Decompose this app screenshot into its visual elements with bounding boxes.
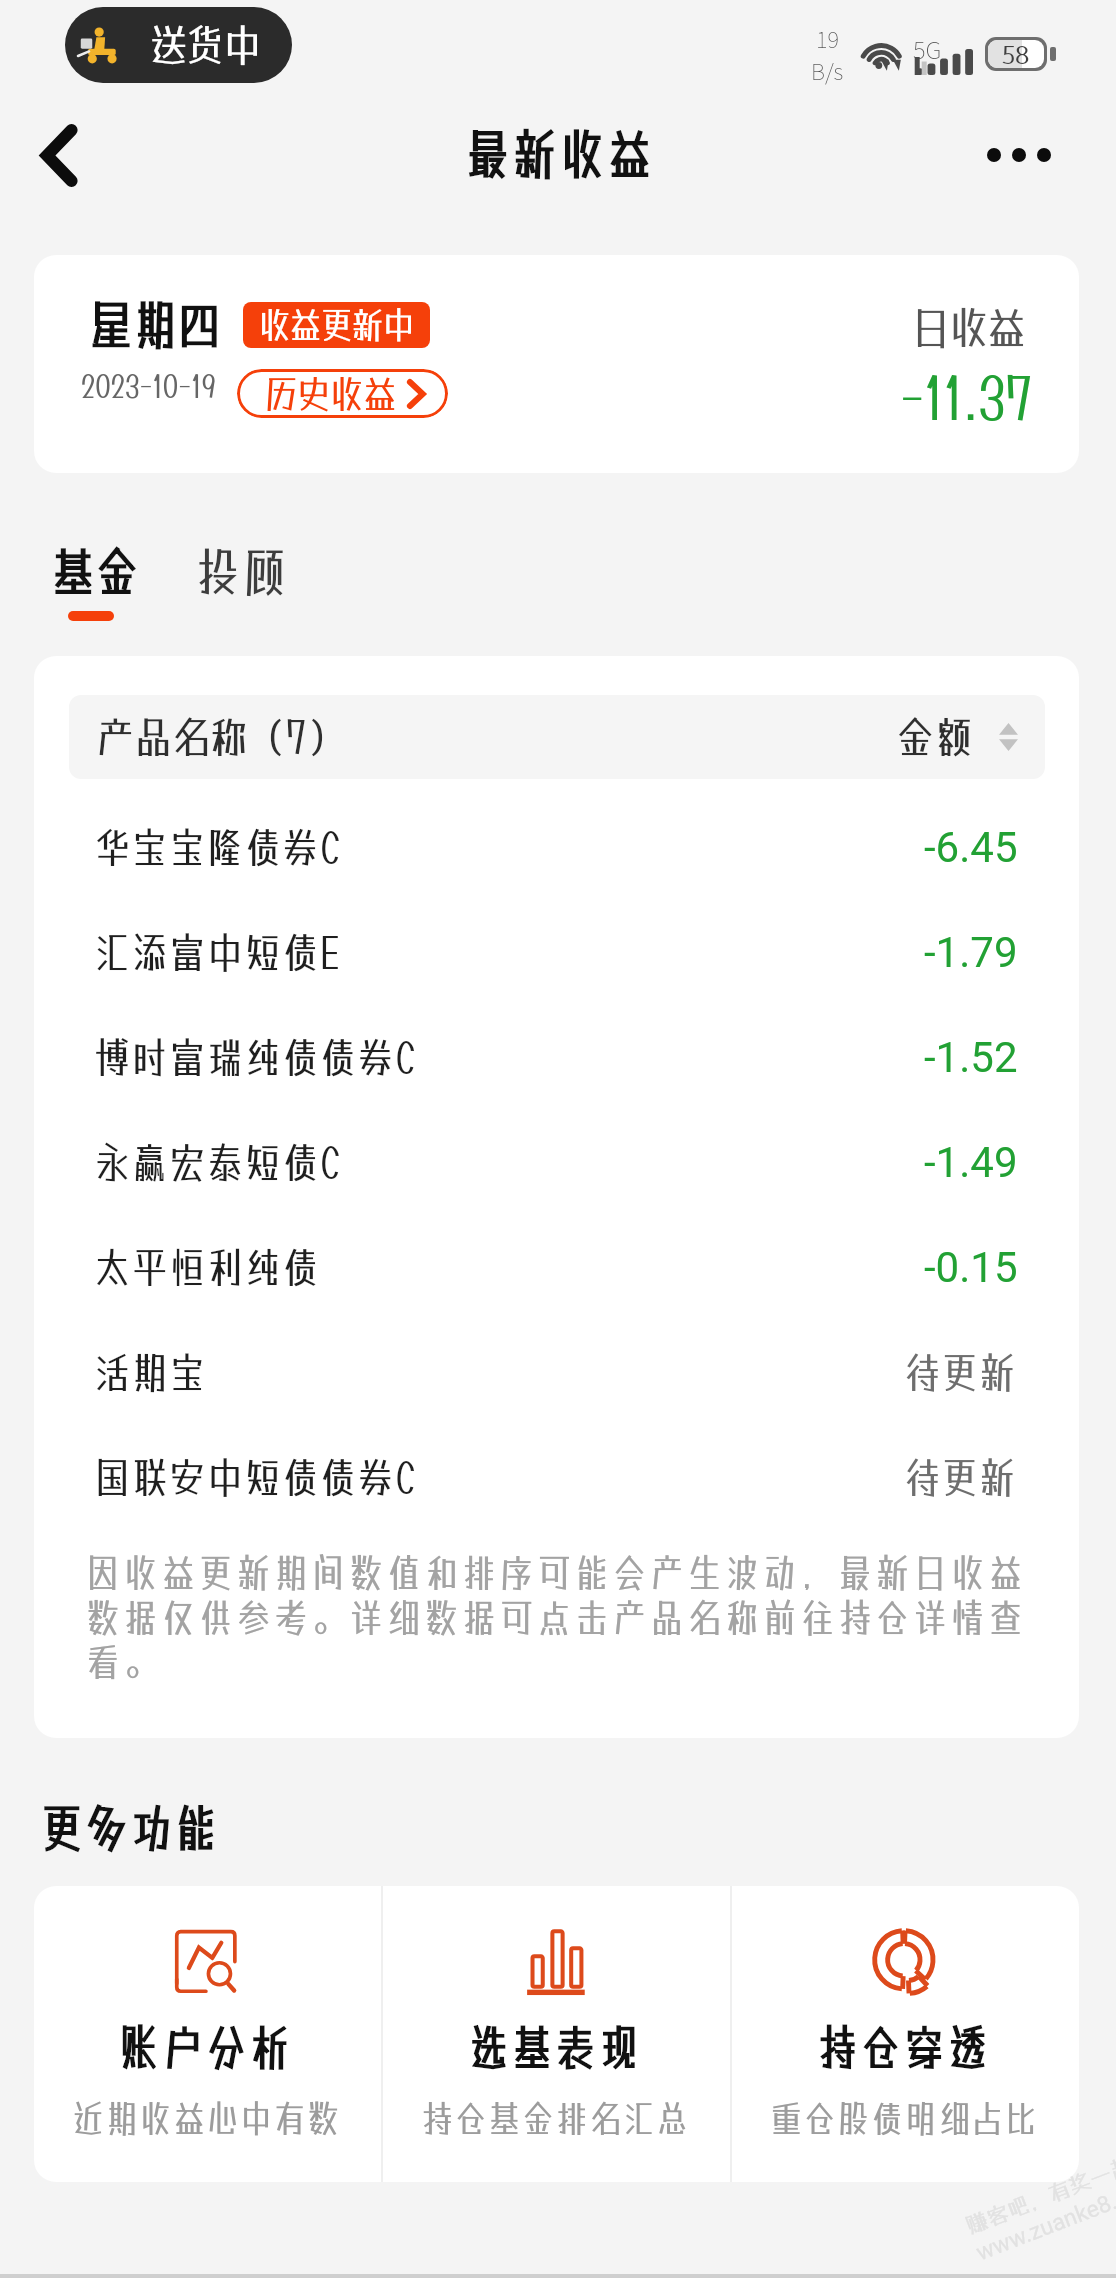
button[interactable]: Back bbox=[16, 112, 102, 198]
staticText: 活期宝 bbox=[95, 1347, 208, 1398]
staticText: 近期收益心中有数 bbox=[73, 2096, 343, 2141]
button[interactable]: 活期宝 bbox=[34, 1327, 1079, 1417]
staticText: -1.49 bbox=[924, 1138, 1018, 1187]
staticText: 19 bbox=[816, 22, 839, 54]
button[interactable]: 送货中 bbox=[65, 7, 292, 83]
staticText: 更多功能 bbox=[42, 1797, 222, 1858]
staticText: 58 bbox=[1002, 40, 1030, 68]
button[interactable]: 账户分析 bbox=[34, 1886, 381, 2182]
button[interactable]: 汇添富中短债E bbox=[34, 907, 1079, 997]
button[interactable]: 基金 bbox=[53, 540, 141, 603]
button[interactable]: 产品名称（7） bbox=[69, 695, 1045, 779]
button[interactable]: 星期四 bbox=[34, 255, 1079, 473]
staticText: www.zuanke8.com bbox=[972, 2172, 1116, 2266]
staticText: -6.45 bbox=[924, 823, 1018, 872]
staticText: -1.79 bbox=[924, 928, 1018, 977]
button[interactable]: 选基表现 bbox=[383, 1886, 730, 2182]
staticText: 金额 bbox=[897, 711, 974, 763]
staticText: 太平恒利纯债 bbox=[95, 1242, 321, 1293]
button[interactable]: 国联安中短债债券C bbox=[34, 1432, 1079, 1522]
button[interactable]: 博时富瑞纯债债券C bbox=[34, 1012, 1079, 1102]
staticText: 历史收益 bbox=[265, 371, 397, 417]
staticText: -11.37 bbox=[900, 363, 1034, 431]
staticText: 因收益更新期间数值和排序可能会产生波动，最新日收益数据仅供参考。详细数据可点击产… bbox=[87, 1549, 1057, 1685]
button[interactable]: 历史收益 bbox=[237, 369, 448, 418]
staticText: 送货中 bbox=[150, 19, 261, 71]
staticText: 待更新 bbox=[905, 1452, 1018, 1503]
staticText: 待更新 bbox=[905, 1347, 1018, 1398]
staticText: 永赢宏泰短债C bbox=[95, 1137, 344, 1188]
staticText: 赚客吧，有奖一起赚！ bbox=[962, 2135, 1116, 2238]
button[interactable]: 持仓穿透 bbox=[732, 1886, 1079, 2182]
staticText: 国联安中短债债券C bbox=[95, 1452, 419, 1503]
staticText: B/s bbox=[811, 54, 844, 86]
staticText: 产品名称（7） bbox=[97, 711, 346, 763]
staticText: 持仓基金排名汇总 bbox=[422, 2096, 692, 2141]
button[interactable]: 华宝宝隆债券C bbox=[34, 802, 1079, 892]
staticText: 日收益 bbox=[912, 301, 1026, 354]
staticText: 选基表现 bbox=[470, 2018, 644, 2076]
staticText: 收益更新中 bbox=[259, 303, 414, 347]
button[interactable]: More options bbox=[976, 112, 1062, 198]
staticText: 最新收益 bbox=[467, 121, 657, 186]
staticText: -1.52 bbox=[924, 1033, 1018, 1082]
staticText: 持仓穿透 bbox=[819, 2018, 993, 2076]
button[interactable]: 永赢宏泰短债C bbox=[34, 1117, 1079, 1207]
staticText: 博时富瑞纯债债券C bbox=[95, 1032, 419, 1083]
staticText: 5G bbox=[913, 31, 942, 66]
button[interactable]: 太平恒利纯债 bbox=[34, 1222, 1079, 1312]
staticText: 2023-10-19 bbox=[81, 368, 216, 405]
staticText: 汇添富中短债E bbox=[95, 927, 343, 978]
staticText: 重仓股债明细占比 bbox=[771, 2096, 1041, 2141]
button[interactable]: 投顾 bbox=[197, 540, 291, 604]
staticText: 星期四 bbox=[91, 293, 223, 356]
staticText: 华宝宝隆债券C bbox=[95, 822, 344, 873]
staticText: 账户分析 bbox=[121, 2018, 295, 2076]
staticText: -0.15 bbox=[924, 1243, 1018, 1292]
